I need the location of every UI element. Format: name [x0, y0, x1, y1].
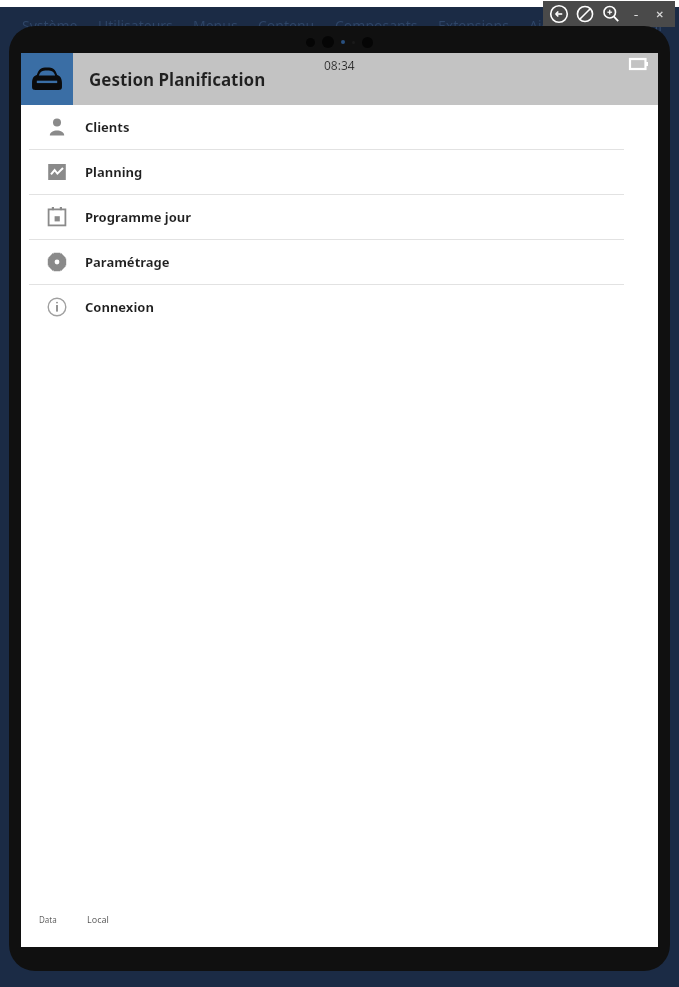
staticText: Système [22, 16, 78, 35]
button[interactable]: App icon [21, 53, 73, 105]
staticText: Contenu [258, 16, 315, 35]
button[interactable]: Clients [21, 105, 658, 149]
staticText: Connexion [85, 298, 154, 316]
staticText: 08:34 [324, 57, 355, 73]
button[interactable]: Programme jour [21, 195, 658, 239]
button[interactable]: Connexion [21, 285, 658, 329]
button[interactable]: Paramétrage [21, 240, 658, 284]
staticText: Programme jour [85, 208, 192, 226]
staticText: Planning [85, 163, 143, 181]
staticText: - [634, 5, 639, 23]
staticText: Utilisateurs [98, 16, 173, 35]
button[interactable]: Close [651, 5, 669, 23]
staticText: Data [39, 914, 57, 925]
staticText: Clients [85, 118, 130, 136]
staticText: SP Page Bui [579, 15, 663, 35]
button[interactable]: Back [549, 4, 569, 24]
staticText: Paramétrage [85, 253, 170, 271]
button[interactable]: Zoom [601, 4, 621, 24]
staticText: Composants [335, 16, 418, 35]
staticText: Aide [529, 16, 559, 35]
button[interactable]: Planning [21, 150, 658, 194]
staticText: Gestion Planification [89, 68, 266, 91]
staticText: Extensions [438, 16, 509, 35]
staticText: × [656, 5, 664, 23]
button[interactable]: Rotate [575, 4, 595, 24]
staticText: Local [87, 913, 109, 925]
button[interactable]: Minimize [627, 5, 645, 23]
staticText: Menus [193, 16, 238, 35]
